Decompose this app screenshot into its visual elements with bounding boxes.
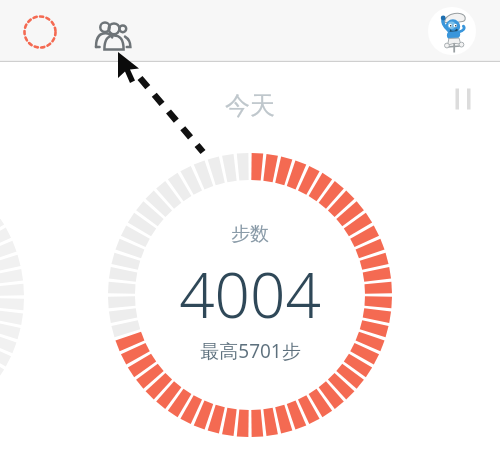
button[interactable]: Activity goal [20, 12, 60, 52]
button[interactable]: Profile [428, 7, 476, 55]
button[interactable]: Pause [446, 82, 480, 116]
staticText: 今天 [225, 90, 275, 121]
staticText: 步数 [231, 222, 269, 246]
staticText: 4004 [179, 252, 321, 336]
staticText: 最高5701步 [200, 338, 301, 364]
button[interactable]: Friends [90, 12, 136, 58]
